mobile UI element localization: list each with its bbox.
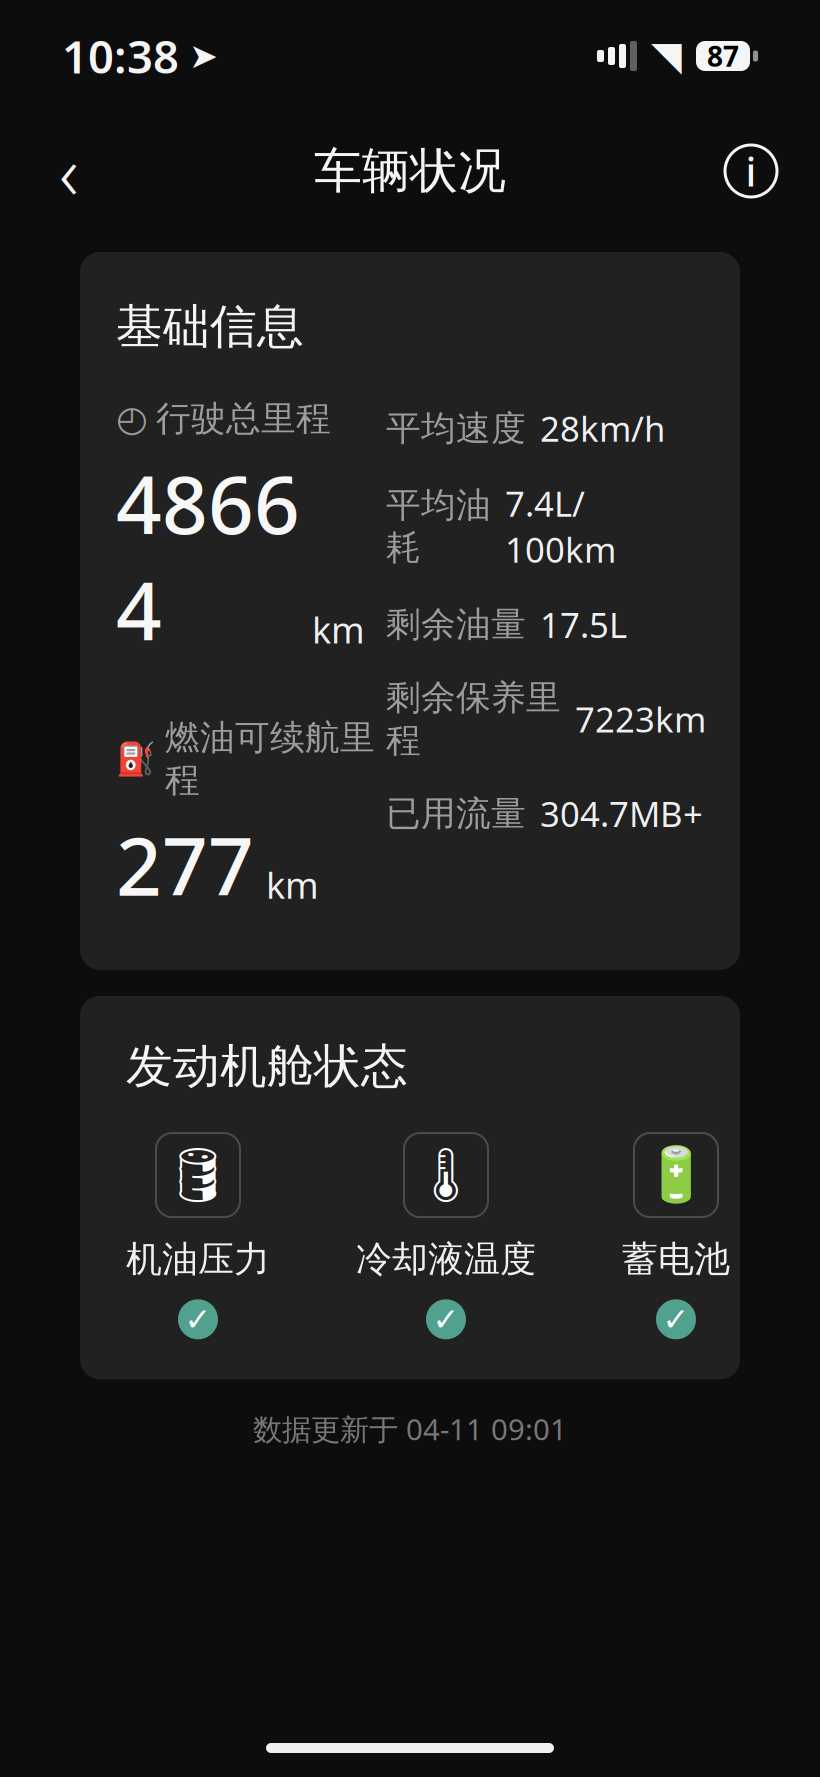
staticText: 87 [707,37,739,75]
staticText: 行驶总里程 [156,397,331,440]
staticText: 🌡 [412,1145,480,1205]
staticText: ◥ [651,33,682,79]
staticText: ✓ [662,1301,689,1337]
staticText: 剩余保养里程 [386,676,561,762]
staticText: 304.7MB+ [540,791,703,837]
staticText: ➤ [189,36,218,76]
staticText: 冷却液温度 [356,1237,536,1281]
staticText: km [266,861,319,909]
staticText: 剩余油量 [386,603,526,646]
button[interactable]: 返回 [30,132,108,210]
staticText: i [745,144,756,197]
button[interactable]: 🌡 [356,1133,536,1339]
staticText: 机油压力 [126,1237,270,1281]
staticText: 7223km [575,696,706,742]
staticText: 已用流量 [386,792,526,835]
staticText: 48664 [116,450,300,662]
button[interactable]: 🛢 [126,1133,270,1339]
staticText: 277 [116,811,254,918]
staticText: 基础信息 [116,298,304,355]
staticText: 28km/h [540,405,665,451]
button[interactable]: 🔋 [622,1133,730,1339]
staticText: 17.5L [540,601,627,647]
staticText: 7.4L/100km [505,480,616,572]
staticText: 蓄电池 [622,1237,730,1281]
staticText: km [312,606,365,653]
staticText: 平均速度 [386,407,526,450]
staticText: ◴ [116,398,147,439]
staticText: ✓ [184,1301,211,1337]
staticText: 平均油耗 [386,484,491,569]
staticText: ⛽ [116,741,156,777]
staticText: 车辆状况 [314,141,506,200]
staticText: 数据更新于 04-11 09:01 [253,1409,567,1448]
staticText: 发动机舱状态 [126,1038,408,1095]
staticText: ✓ [432,1301,459,1337]
button[interactable]: 信息 [712,132,790,210]
staticText: ‹ [59,121,79,221]
staticText: 🔋 [643,1145,709,1205]
staticText: 燃油可续航里程 [165,716,375,802]
staticText: 🛢 [164,1145,232,1205]
staticText: 10:38 [62,26,179,86]
